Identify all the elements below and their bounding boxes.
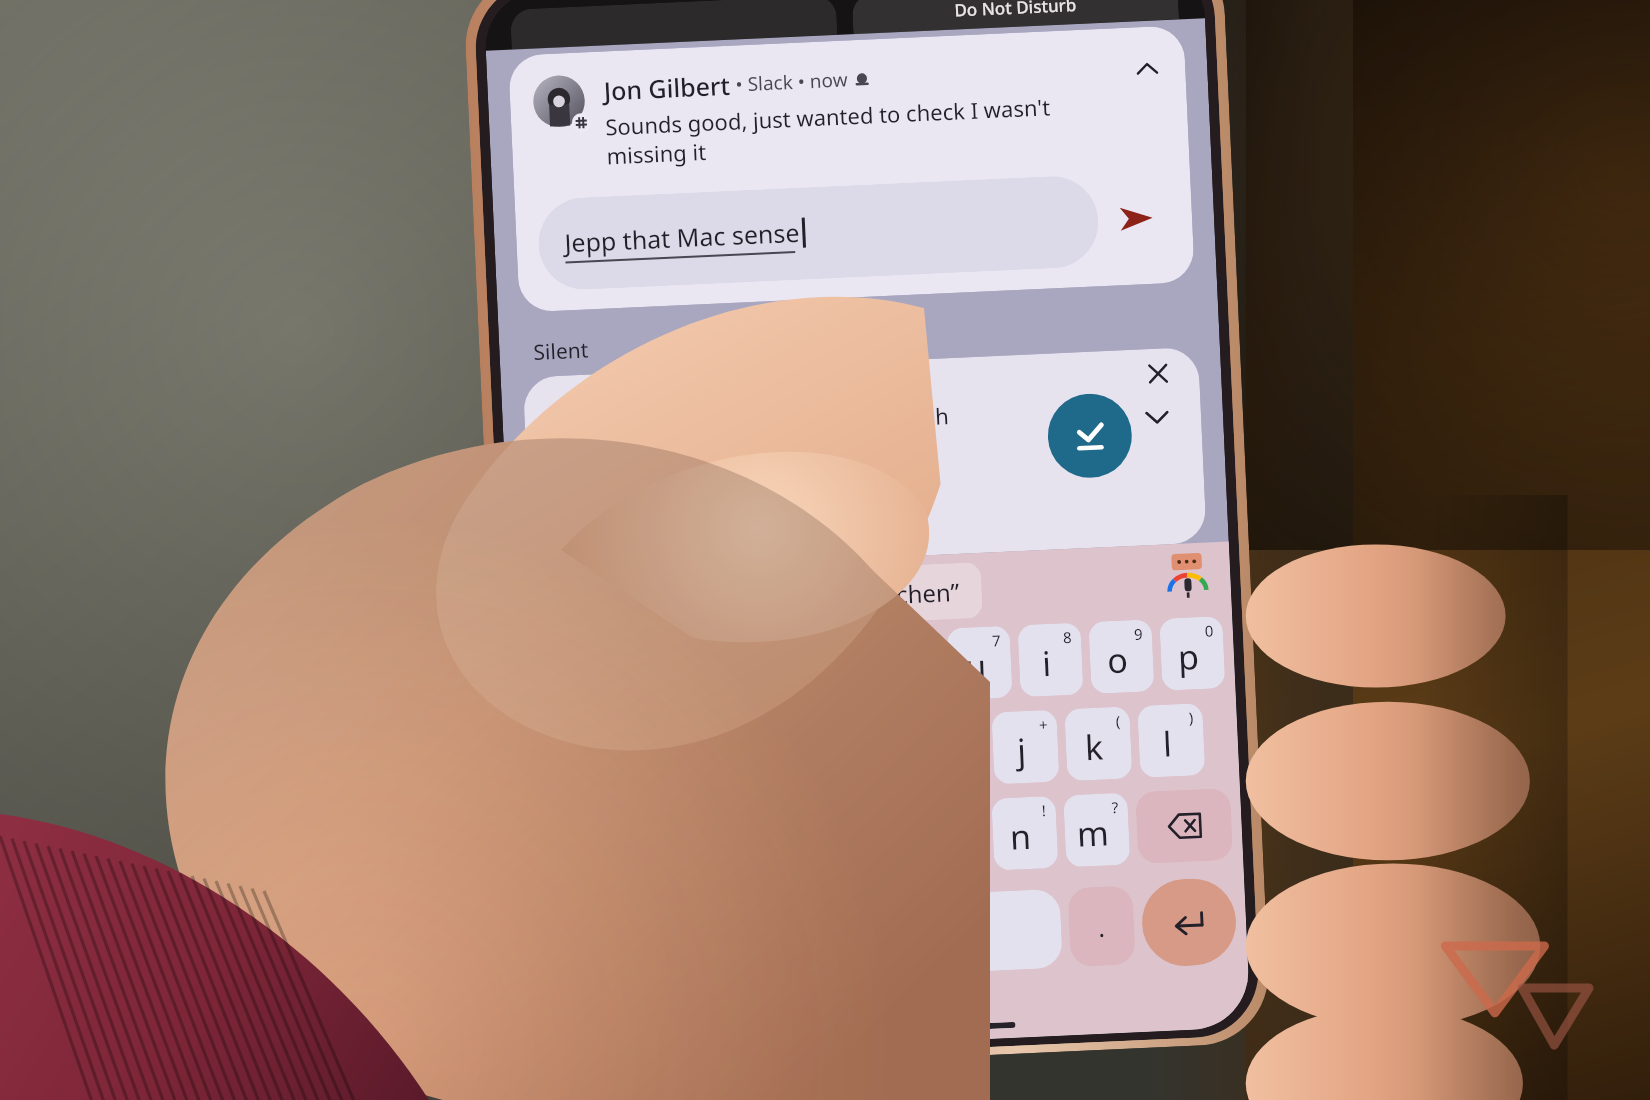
- button[interactable]: l: [1137, 703, 1205, 778]
- button[interactable]: d: [699, 723, 768, 798]
- button[interactable]: DE • EN: [788, 889, 1063, 980]
- button[interactable]: Open download: [1046, 392, 1134, 480]
- staticText: o: [1106, 636, 1129, 683]
- button[interactable]: Send: [1096, 179, 1176, 258]
- button[interactable]: u: [946, 626, 1013, 700]
- button[interactable]: Collapse notification: [1126, 48, 1168, 90]
- staticText: @: [594, 734, 609, 755]
- button[interactable]: Jepp that Mac sense: [537, 174, 1100, 292]
- button[interactable]: n: [991, 796, 1058, 871]
- button[interactable]: Voice input: [1157, 550, 1218, 611]
- staticText: Silent: [533, 335, 589, 367]
- staticText: 7: [992, 630, 1001, 650]
- staticText: 0: [1204, 620, 1214, 641]
- button[interactable]: Enter: [1140, 877, 1238, 968]
- button[interactable]: Backspace: [1135, 788, 1233, 864]
- staticText: j: [1016, 727, 1027, 773]
- staticText: 9: [1133, 624, 1143, 644]
- button[interactable]: j: [991, 710, 1059, 784]
- staticText: p: [1177, 633, 1200, 680]
- button[interactable]: i: [1017, 622, 1084, 697]
- staticText: l: [1162, 720, 1173, 767]
- staticText: s: [646, 743, 665, 790]
- button[interactable]: .: [1067, 885, 1136, 967]
- staticText: ): [1188, 707, 1194, 728]
- staticText: Jepp that Mac sense: [564, 215, 801, 259]
- button[interactable]: o: [1088, 619, 1154, 694]
- staticText: (: [1115, 711, 1121, 731]
- button[interactable]: [523, 347, 1207, 573]
- staticText: t: [826, 649, 841, 696]
- button[interactable]: r: [734, 635, 800, 710]
- button[interactable]: “Senden”: [666, 570, 814, 632]
- button[interactable]: a: [551, 730, 620, 804]
- staticText: +: [1038, 714, 1048, 734]
- button[interactable]: Do Not Disturb: [852, 0, 1179, 34]
- staticText: m: [1076, 809, 1110, 857]
- button[interactable]: Dismiss: [1134, 350, 1182, 398]
- staticText: ?: [1111, 797, 1119, 817]
- button[interactable]: k: [1064, 706, 1132, 781]
- staticText: i: [1041, 640, 1052, 686]
- button[interactable]: s: [625, 726, 694, 801]
- button[interactable]: m: [1063, 792, 1130, 867]
- staticText: Do Not Disturb: [954, 0, 1077, 21]
- staticText: u: [964, 643, 988, 690]
- button[interactable]: p: [1159, 616, 1225, 691]
- button[interactable]: Quick setting tile: [510, 0, 837, 50]
- staticText: 5: [850, 636, 860, 657]
- staticText: Download complete • 135.80 KB: [604, 435, 934, 480]
- staticText: Jon Gilbert: [603, 68, 731, 107]
- button[interactable]: Jon Gilbert: [508, 25, 1195, 313]
- button[interactable]: t: [805, 632, 871, 707]
- staticText: 8: [1062, 627, 1072, 647]
- button[interactable]: z: [875, 629, 942, 704]
- staticText: • Slack • now: [730, 66, 854, 98]
- staticText: Sounds good, just wanted to check I wasn…: [605, 88, 1123, 170]
- button[interactable]: “Löschen”: [826, 562, 983, 625]
- button[interactable]: Expand: [1130, 390, 1184, 444]
- staticText: !: [1041, 800, 1047, 820]
- staticText: k: [1084, 723, 1105, 770]
